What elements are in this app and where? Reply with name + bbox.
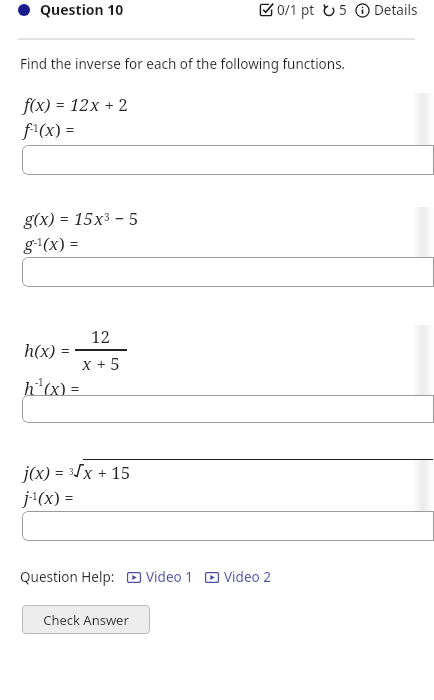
staticText: = <box>51 93 70 116</box>
staticText: Video 1 <box>146 568 193 586</box>
staticText: ) = <box>55 118 75 141</box>
staticText: + 15 <box>93 461 131 484</box>
staticText: Check Answer <box>43 611 129 629</box>
staticText: ( <box>44 377 50 395</box>
staticText: h(x) <box>24 339 56 362</box>
staticText: + 5 <box>92 352 120 375</box>
button[interactable] <box>22 257 434 287</box>
staticText: f(x) <box>24 93 51 116</box>
staticText: Video 2 <box>224 568 271 586</box>
button[interactable]: Check Answer <box>22 605 150 634</box>
staticText: = <box>55 207 74 230</box>
staticText: = <box>56 339 75 362</box>
staticText: ) = <box>54 486 74 509</box>
staticText: 3 <box>104 210 110 224</box>
staticText: -1 <box>35 375 44 389</box>
staticText: ( <box>39 118 45 141</box>
button[interactable] <box>22 145 434 175</box>
staticText: -1 <box>34 235 43 249</box>
staticText: 5 <box>339 1 347 19</box>
staticText: j <box>24 486 29 509</box>
button[interactable]: Video 2 <box>205 568 271 586</box>
button[interactable] <box>22 511 434 541</box>
staticText: x <box>44 486 54 509</box>
staticText: 12 <box>91 325 111 348</box>
staticText: ( <box>38 486 44 509</box>
button[interactable]: Video 1 <box>127 568 193 586</box>
staticText: 3 <box>69 466 74 477</box>
staticText: x <box>45 118 55 141</box>
button[interactable] <box>22 395 434 423</box>
staticText: h <box>24 377 35 395</box>
staticText: g(x) <box>24 207 55 230</box>
staticText: j(x) <box>24 461 50 484</box>
staticText: x <box>50 377 60 395</box>
staticText: 12 <box>70 93 90 116</box>
staticText: − 5 <box>110 207 139 230</box>
staticText: + 2 <box>100 93 128 116</box>
staticText: 15 <box>74 207 94 230</box>
staticText: x <box>83 461 93 484</box>
staticText: x <box>82 352 92 375</box>
staticText: -1 <box>30 121 39 135</box>
staticText: ) = <box>60 377 80 395</box>
staticText: f <box>24 118 30 141</box>
staticText: x <box>90 93 100 116</box>
staticText: Details <box>374 1 418 19</box>
staticText: x <box>94 207 104 230</box>
staticText: ) = <box>59 232 79 255</box>
staticText: Question 10 <box>40 0 124 19</box>
staticText: ( <box>43 232 49 255</box>
staticText: g <box>24 232 34 255</box>
staticText: -1 <box>29 489 38 503</box>
staticText: 0/1 pt <box>277 1 315 19</box>
staticText: x <box>49 232 59 255</box>
staticText: Find the inverse for each of the followi… <box>20 55 346 73</box>
staticText: = <box>50 461 69 484</box>
staticText: Question Help: <box>20 568 115 586</box>
button[interactable]: Details <box>355 1 418 19</box>
